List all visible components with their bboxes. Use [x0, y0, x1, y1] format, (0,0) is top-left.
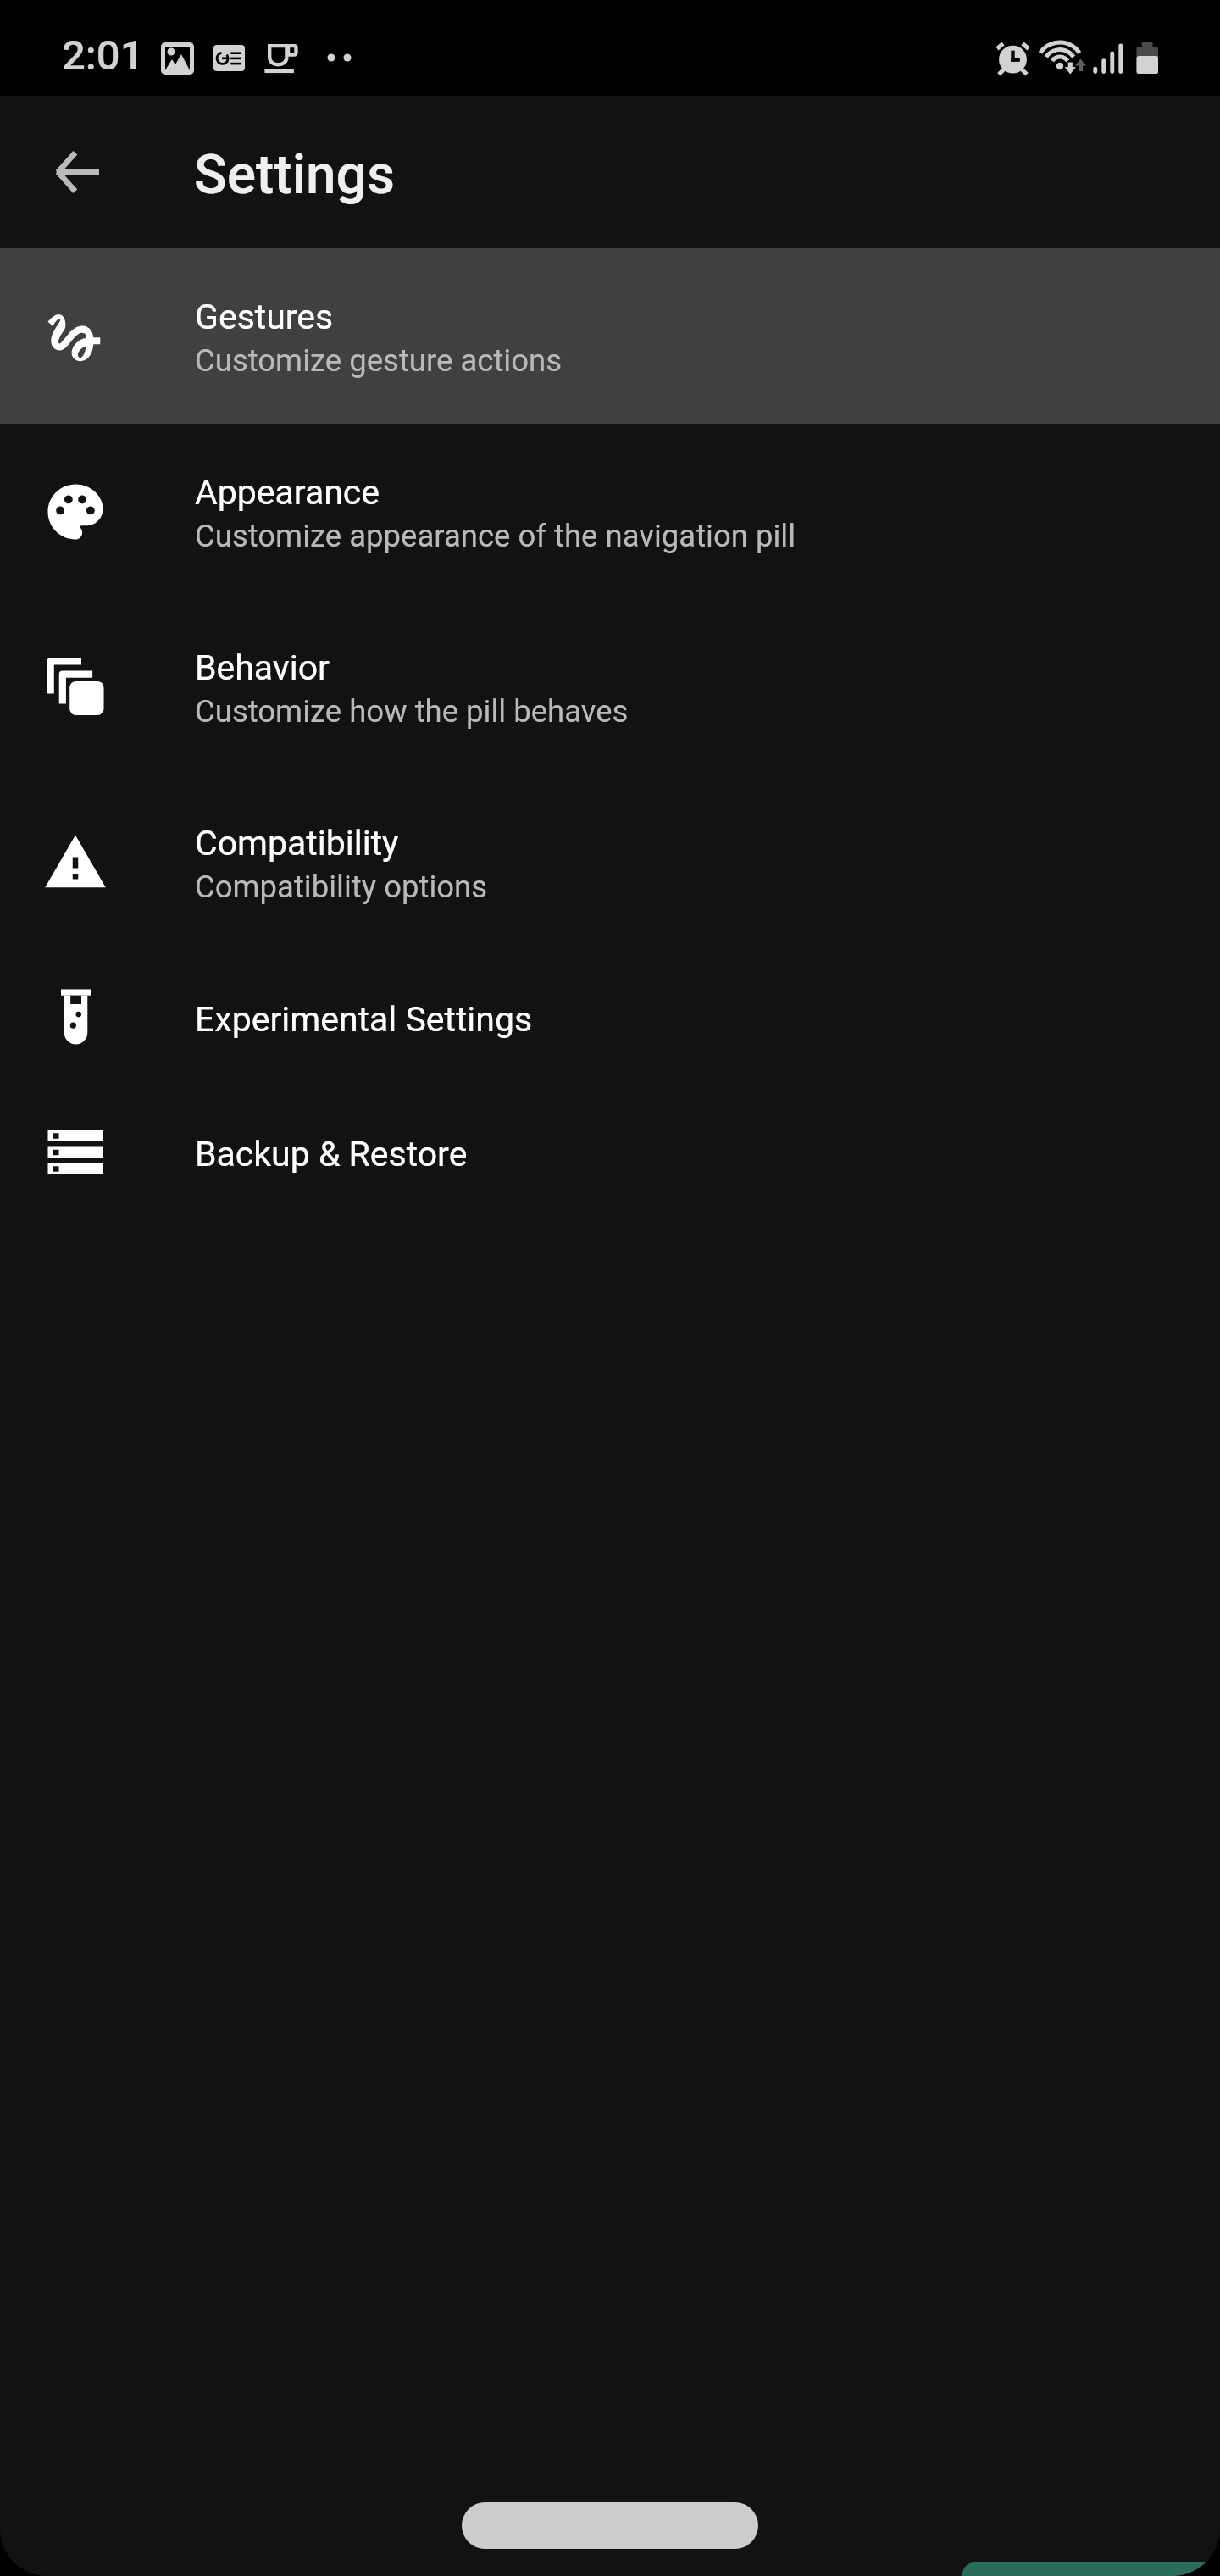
staticText: Customize appearance of the navigation p… [195, 518, 796, 554]
staticText: Compatibility [195, 823, 399, 863]
button[interactable]: Behavior [0, 599, 1220, 774]
staticText: Compatibility options [195, 869, 488, 905]
staticText: 2:01 [62, 31, 144, 80]
button[interactable]: Experimental Settings [0, 950, 1220, 1085]
button[interactable]: Appearance [0, 424, 1220, 599]
button[interactable]: Gestures [0, 248, 1220, 424]
staticText: Appearance [195, 472, 380, 513]
staticText: Customize gesture actions [195, 342, 563, 379]
staticText: Behavior [195, 647, 330, 688]
staticText: Customize how the pill behaves [195, 693, 629, 730]
button[interactable]: Backup & Restore [0, 1085, 1220, 1219]
staticText: Gestures [195, 297, 334, 337]
staticText: Experimental Settings [195, 999, 533, 1040]
button[interactable]: Back [33, 128, 121, 216]
staticText: Settings [194, 143, 395, 207]
staticText: Backup & Restore [195, 1134, 468, 1174]
button[interactable]: Compatibility [0, 774, 1220, 950]
